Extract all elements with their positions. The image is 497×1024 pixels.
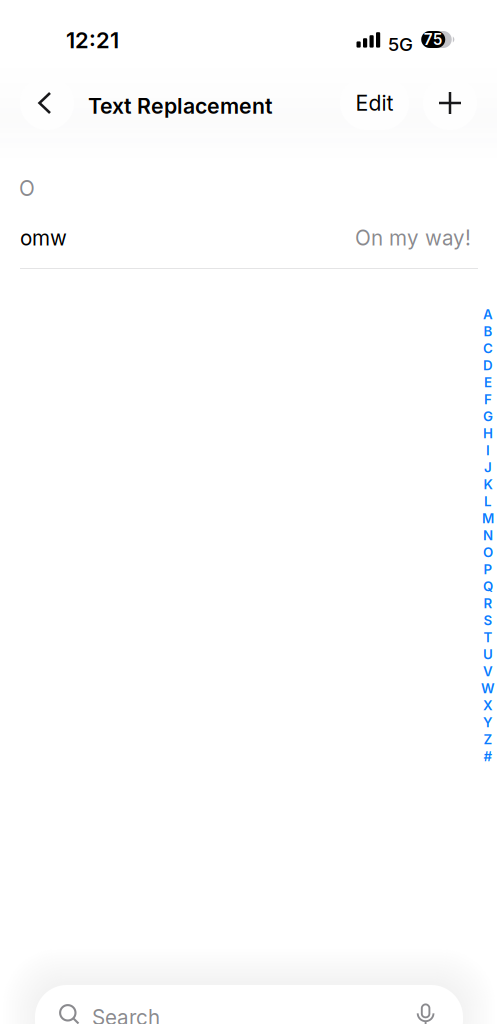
staticText: H	[483, 425, 493, 441]
staticText: K	[483, 476, 492, 492]
staticText: U	[483, 646, 493, 662]
staticText: I	[486, 442, 490, 458]
staticText: G	[483, 408, 493, 424]
staticText: 75	[424, 30, 443, 49]
staticText: J	[484, 459, 492, 475]
button[interactable]: Add	[423, 76, 477, 130]
staticText: M	[482, 510, 494, 526]
staticText: Q	[483, 578, 493, 594]
staticText: #	[483, 748, 492, 764]
staticText: Z	[483, 731, 492, 747]
staticText: O	[483, 544, 493, 560]
staticText: 5G	[388, 33, 413, 56]
staticText: L	[484, 493, 492, 509]
staticText: W	[481, 680, 495, 696]
staticText: O	[19, 176, 35, 201]
staticText: N	[483, 527, 493, 543]
staticText: A	[483, 306, 493, 322]
staticText: Y	[483, 714, 493, 730]
staticText: V	[483, 663, 493, 679]
staticText: F	[484, 391, 492, 407]
staticText: R	[483, 595, 492, 611]
staticText: C	[483, 340, 493, 356]
staticText: Text Replacement	[88, 93, 273, 119]
button[interactable]: omw	[0, 210, 497, 266]
staticText: omw	[20, 225, 67, 250]
button[interactable]: Search	[35, 985, 463, 1024]
staticText: E	[484, 374, 492, 390]
staticText: Edit	[355, 90, 393, 116]
staticText: B	[483, 323, 492, 339]
staticText: X	[483, 697, 493, 713]
button[interactable]: Edit	[340, 76, 409, 130]
staticText: T	[483, 629, 492, 645]
staticText: D	[483, 357, 493, 373]
staticText: S	[483, 612, 492, 628]
staticText: Search	[92, 1005, 160, 1024]
staticText: P	[483, 561, 492, 577]
staticText: 12:21	[66, 27, 119, 54]
staticText: On my way!	[355, 225, 471, 250]
button[interactable]: Back	[20, 76, 74, 130]
